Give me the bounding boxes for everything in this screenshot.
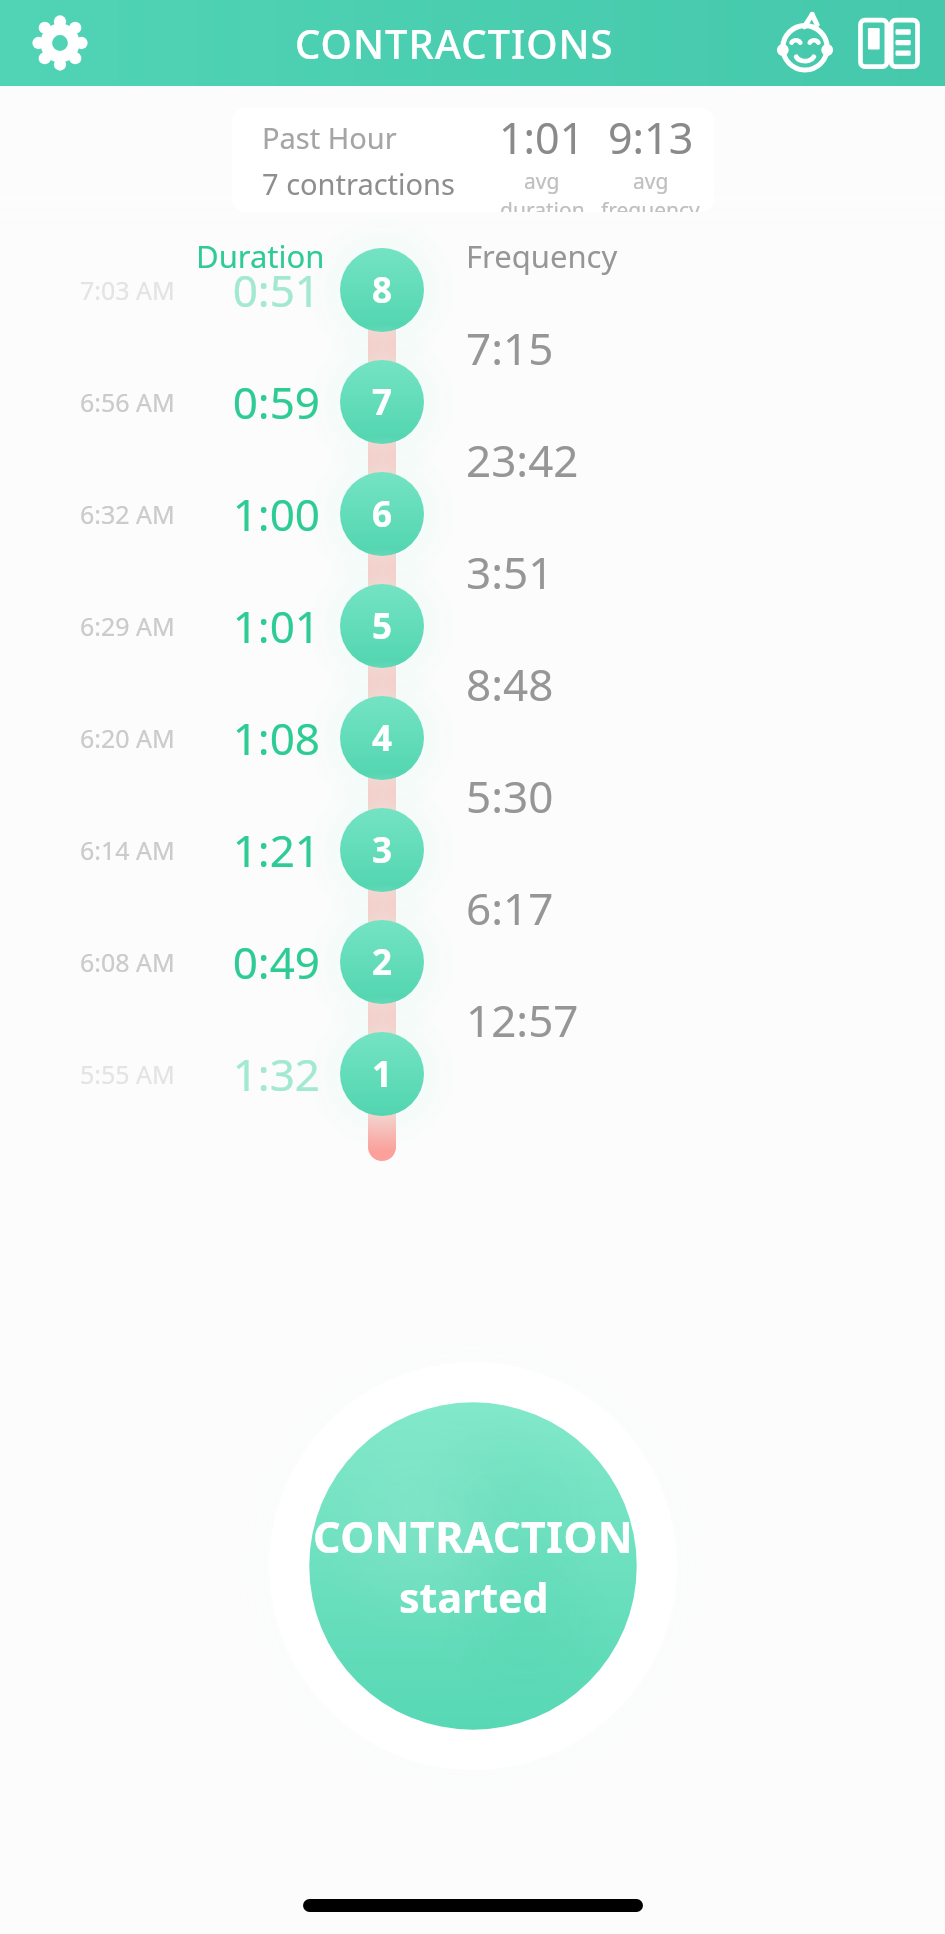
button[interactable]: 6:56 AM bbox=[0, 346, 945, 458]
button[interactable]: Past Hour bbox=[232, 108, 714, 212]
staticText: 8:48 bbox=[466, 654, 554, 714]
staticText: 3:51 bbox=[466, 542, 554, 602]
staticText: 6:14 AM bbox=[80, 833, 175, 867]
button[interactable]: Settings bbox=[22, 5, 98, 81]
staticText: 6 bbox=[352, 490, 412, 538]
button[interactable]: 6:08 AM bbox=[0, 906, 945, 1018]
staticText: 6:32 AM bbox=[80, 497, 175, 531]
staticText: CONTRACTIONS bbox=[295, 16, 614, 70]
staticText: 0:59 bbox=[195, 372, 320, 432]
staticText: 5:55 AM bbox=[80, 1057, 175, 1091]
button[interactable]: 7:03 AM bbox=[0, 234, 945, 346]
button[interactable]: 5:55 AM bbox=[0, 1018, 945, 1130]
staticText: 1:01 bbox=[195, 596, 320, 656]
staticText: 7:03 AM bbox=[80, 273, 175, 307]
staticText: 9:13 bbox=[608, 108, 694, 167]
staticText: Past Hour bbox=[262, 118, 397, 157]
staticText: 6:17 bbox=[466, 878, 554, 938]
button[interactable]: Baby bbox=[763, 1, 847, 85]
staticText: avg bbox=[633, 167, 669, 196]
button[interactable]: 6:29 AM bbox=[0, 570, 945, 682]
button[interactable]: 6:14 AM bbox=[0, 794, 945, 906]
staticText: 1:00 bbox=[195, 484, 320, 544]
staticText: 7 bbox=[352, 378, 412, 426]
staticText: 3 bbox=[352, 826, 412, 874]
staticText: avg bbox=[524, 167, 560, 196]
staticText: 4 bbox=[352, 714, 412, 762]
staticText: 5 bbox=[352, 602, 412, 650]
staticText: frequency bbox=[601, 196, 700, 212]
staticText: CONTRACTION bbox=[313, 1507, 634, 1566]
button[interactable]: 6:20 AM bbox=[0, 682, 945, 794]
staticText: 6:56 AM bbox=[80, 385, 175, 419]
staticText: duration bbox=[500, 196, 585, 212]
staticText: 6:20 AM bbox=[80, 721, 175, 755]
staticText: 1:21 bbox=[195, 820, 320, 880]
staticText: Frequency bbox=[466, 235, 618, 277]
staticText: 8 bbox=[352, 266, 412, 314]
staticText: started bbox=[399, 1569, 549, 1625]
staticText: 2 bbox=[352, 938, 412, 986]
staticText: Duration bbox=[196, 235, 325, 277]
staticText: 0:49 bbox=[195, 932, 320, 992]
staticText: 12:57 bbox=[466, 990, 579, 1050]
button[interactable]: 6:32 AM bbox=[0, 458, 945, 570]
staticText: 6:08 AM bbox=[80, 945, 175, 979]
staticText: 7:15 bbox=[466, 318, 554, 378]
staticText: 0:51 bbox=[195, 260, 320, 320]
staticText: 1 bbox=[352, 1050, 412, 1098]
staticText: 5:30 bbox=[466, 766, 554, 826]
staticText: 23:42 bbox=[466, 430, 579, 490]
staticText: 1:32 bbox=[195, 1044, 320, 1104]
staticText: 6:29 AM bbox=[80, 609, 175, 643]
staticText: 7 contractions bbox=[262, 164, 455, 203]
staticText: 1:01 bbox=[499, 108, 585, 167]
button[interactable]: CONTRACTION bbox=[223, 1316, 723, 1816]
button[interactable]: Guide bbox=[847, 1, 931, 85]
staticText: 1:08 bbox=[195, 708, 320, 768]
